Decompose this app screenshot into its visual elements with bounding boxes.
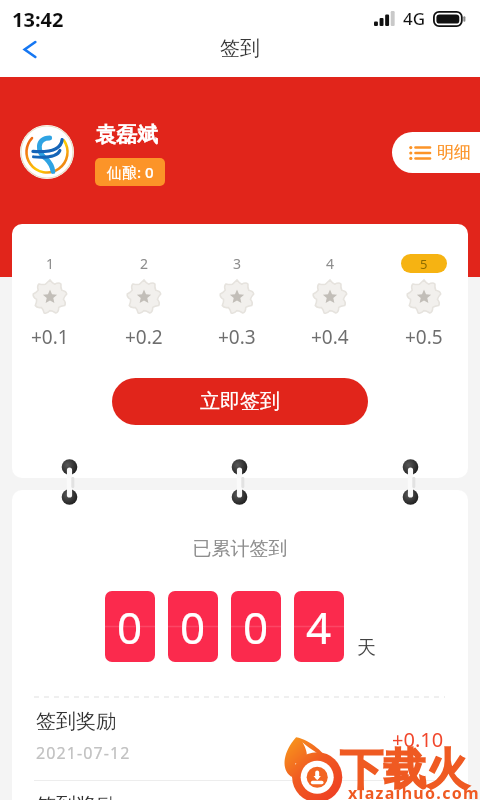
staticText: 4 bbox=[326, 254, 335, 273]
staticText: 签到奖励 bbox=[36, 709, 116, 734]
staticText: 明细 bbox=[437, 142, 471, 163]
staticText: +0.10 bbox=[392, 726, 444, 753]
staticText: 2 bbox=[140, 254, 149, 273]
staticText: 13:42 bbox=[12, 6, 64, 33]
staticText: 3 bbox=[233, 254, 242, 273]
staticText: 0 bbox=[243, 597, 269, 657]
staticText: 天 bbox=[357, 636, 376, 660]
staticText: 立即签到 bbox=[200, 389, 280, 414]
staticText: xiazaihuo.com bbox=[348, 782, 480, 800]
staticText: 已累计签到 bbox=[12, 537, 468, 561]
staticText: 0 bbox=[117, 597, 143, 657]
staticText: 0 bbox=[180, 597, 206, 657]
staticText: 袁磊斌 bbox=[95, 122, 158, 148]
button[interactable]: 明细 bbox=[392, 132, 480, 173]
staticText: +0.4 bbox=[311, 324, 349, 350]
staticText: 5 bbox=[420, 255, 428, 273]
staticText: +0.5 bbox=[405, 324, 443, 350]
staticText: 1 bbox=[46, 254, 55, 273]
staticText: 签到奖励 bbox=[36, 793, 116, 800]
button[interactable]: Back bbox=[8, 29, 52, 70]
staticText: 仙酿: 0 bbox=[107, 162, 154, 182]
staticText: 4G bbox=[403, 7, 426, 30]
staticText: 下载火 bbox=[340, 743, 469, 797]
staticText: +0.1 bbox=[31, 324, 69, 350]
staticText: +0.3 bbox=[218, 324, 256, 350]
staticText: 签到 bbox=[220, 36, 260, 61]
staticText: +0.2 bbox=[125, 324, 163, 350]
staticText: 4 bbox=[306, 597, 332, 657]
button[interactable]: 立即签到 bbox=[112, 378, 368, 425]
staticText: 2021-07-12 bbox=[36, 742, 131, 764]
